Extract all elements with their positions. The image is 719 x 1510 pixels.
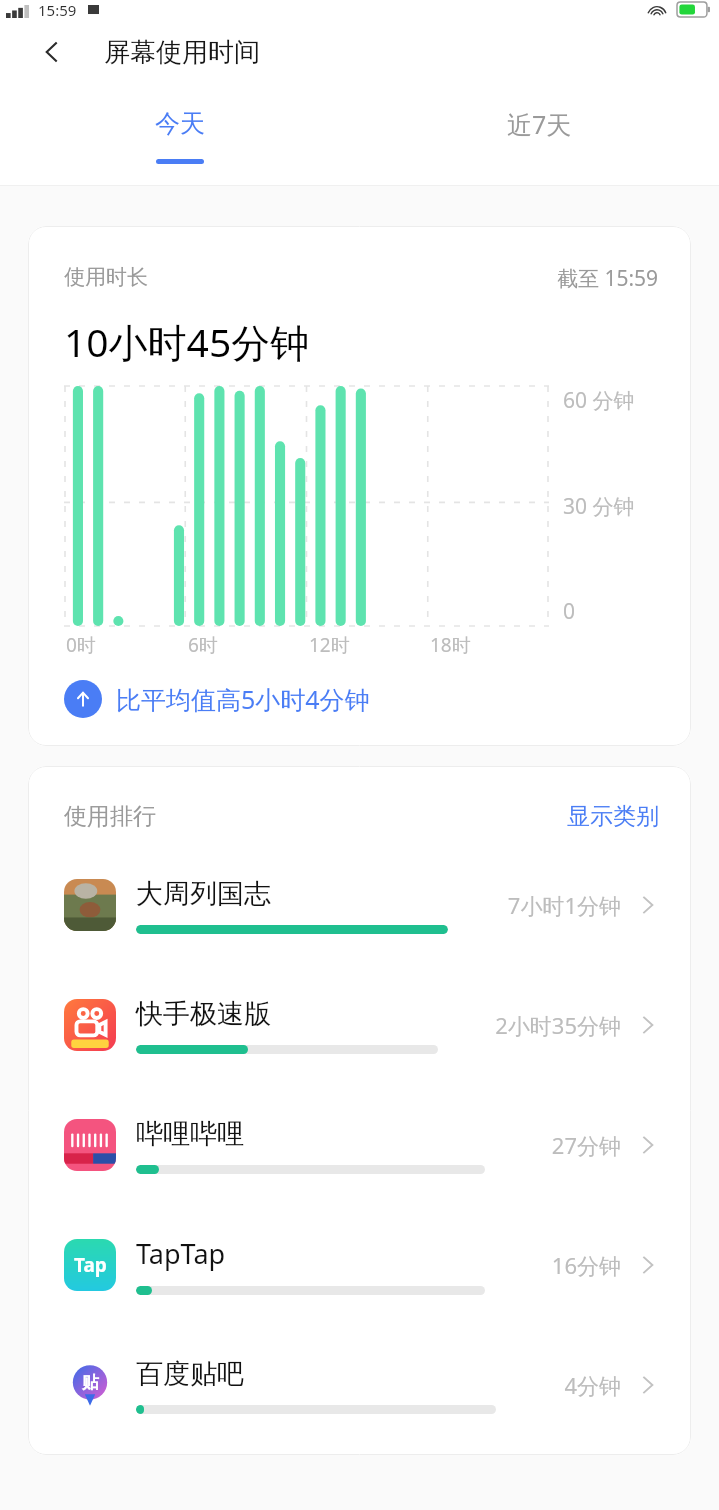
button[interactable]: 今天 — [0, 86, 359, 186]
staticText: 2小时35分钟 — [495, 1010, 621, 1040]
staticText: 10小时45分钟 — [64, 315, 310, 368]
staticText: TapTap — [136, 1235, 226, 1272]
staticText: 大周列国志 — [136, 877, 271, 911]
button[interactable]: 显示类别 — [567, 802, 659, 831]
button[interactable]: Back — [30, 30, 74, 74]
staticText: 18时 — [430, 632, 471, 658]
staticText: 60 分钟 — [563, 386, 635, 415]
staticText: 使用时长 — [64, 264, 148, 290]
button[interactable]: 大周列国志 — [64, 845, 659, 965]
staticText: 7小时1分钟 — [507, 890, 621, 920]
staticText: 哔哩哔哩 — [136, 1117, 244, 1151]
staticText: 截至 15:59 — [557, 264, 659, 293]
staticText: 今天 — [155, 108, 205, 139]
button[interactable]: 贴 — [64, 1325, 659, 1445]
staticText: 27分钟 — [551, 1130, 621, 1160]
button[interactable]: 近7天 — [359, 86, 719, 186]
button[interactable]: 哔哩哔哩 — [64, 1085, 659, 1205]
staticText: 4分钟 — [564, 1370, 621, 1400]
button[interactable]: Tap — [64, 1205, 659, 1325]
staticText: 近7天 — [507, 107, 572, 141]
staticText: Tap — [74, 1252, 107, 1278]
staticText: 快手极速版 — [136, 997, 271, 1031]
staticText: 0时 — [66, 632, 96, 658]
staticText: 使用排行 — [64, 802, 156, 831]
staticText: 0 — [563, 597, 576, 626]
staticText: 12时 — [309, 632, 350, 658]
staticText: 6时 — [188, 632, 218, 658]
staticText: 30 分钟 — [563, 492, 635, 521]
button[interactable]: 快手极速版 — [64, 965, 659, 1085]
staticText: 比平均值高5小时4分钟 — [116, 682, 370, 716]
staticText: 15:59 — [38, 0, 77, 18]
staticText: 屏幕使用时间 — [104, 36, 260, 69]
button[interactable]: 比平均值高5小时4分钟 — [64, 680, 370, 718]
staticText: 16分钟 — [551, 1250, 621, 1280]
staticText: 百度贴吧 — [136, 1357, 244, 1391]
staticText: 贴 — [82, 1372, 99, 1393]
